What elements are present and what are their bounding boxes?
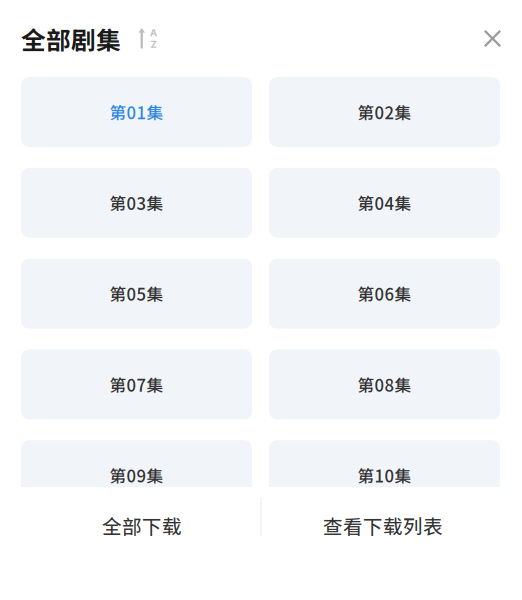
button[interactable]: 第09集	[21, 440, 252, 510]
staticText: 第03集	[109, 191, 163, 215]
button[interactable]: Sort order	[121, 28, 157, 49]
staticText: 第07集	[109, 372, 163, 396]
staticText: 第05集	[109, 281, 163, 306]
button[interactable]: 第07集	[21, 349, 252, 419]
staticText: 第06集	[357, 281, 411, 306]
button[interactable]: 第10集	[269, 440, 500, 510]
button[interactable]: 第04集	[269, 168, 500, 238]
button[interactable]: 查看下载列表	[261, 492, 522, 559]
button[interactable]: 第06集	[269, 259, 500, 329]
button[interactable]: 第05集	[21, 259, 252, 329]
staticText: A	[150, 27, 157, 38]
staticText: 第09集	[109, 463, 163, 487]
staticText: 第01集	[109, 100, 163, 124]
staticText: 第04集	[357, 191, 411, 215]
staticText: Z	[150, 38, 156, 50]
staticText: 全部下载	[102, 511, 182, 540]
staticText: 全部剧集	[21, 21, 121, 57]
staticText: 第02集	[357, 100, 411, 124]
button[interactable]: 第08集	[269, 349, 500, 419]
button[interactable]: Close	[484, 30, 501, 47]
staticText: 第10集	[357, 463, 411, 487]
staticText: 查看下载列表	[323, 511, 443, 540]
button[interactable]: 全部下载	[0, 492, 261, 559]
button[interactable]: 第03集	[21, 168, 252, 238]
button[interactable]: 第02集	[269, 77, 500, 147]
button[interactable]: 第01集	[21, 77, 252, 147]
staticText: 第08集	[357, 372, 411, 396]
